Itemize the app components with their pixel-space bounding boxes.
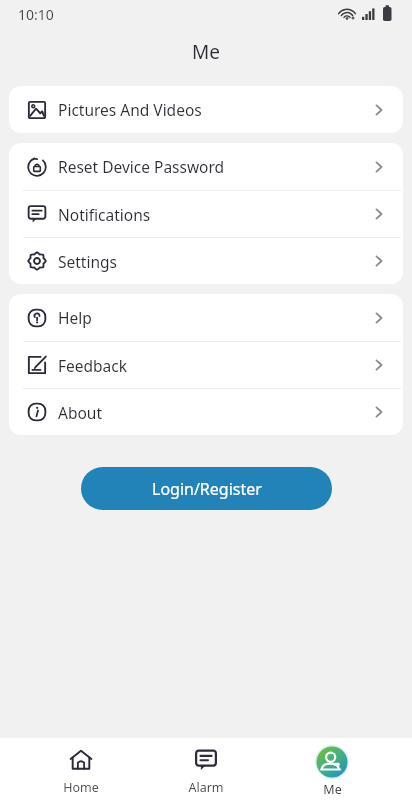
staticText: Notifications xyxy=(58,204,151,225)
button[interactable]: Alarm xyxy=(161,743,251,796)
button[interactable]: Pictures And Videos xyxy=(9,86,403,133)
other: Me xyxy=(315,745,349,779)
button[interactable]: Login/Register xyxy=(81,467,332,510)
button[interactable]: Reset Device Password xyxy=(9,143,403,190)
staticText: Reset Device Password xyxy=(58,156,225,177)
button[interactable]: Home xyxy=(36,743,126,796)
staticText: Feedback xyxy=(58,355,128,376)
button[interactable]: About xyxy=(9,389,403,435)
staticText: Me xyxy=(192,39,220,65)
staticText: Me xyxy=(323,781,342,798)
staticText: 10:10 xyxy=(18,5,54,24)
staticText: Pictures And Videos xyxy=(58,99,202,120)
button[interactable]: Settings xyxy=(9,238,403,284)
button[interactable]: Help xyxy=(9,294,403,341)
staticText: Settings xyxy=(58,251,117,272)
button[interactable]: Notifications xyxy=(9,191,403,237)
staticText: Help xyxy=(58,307,92,328)
staticText: Login/Register xyxy=(152,478,262,500)
button[interactable]: Feedback xyxy=(9,342,403,388)
staticText: About xyxy=(58,402,102,423)
button[interactable]: Me xyxy=(287,741,377,798)
staticText: Alarm xyxy=(188,779,224,796)
staticText: Home xyxy=(63,779,99,796)
